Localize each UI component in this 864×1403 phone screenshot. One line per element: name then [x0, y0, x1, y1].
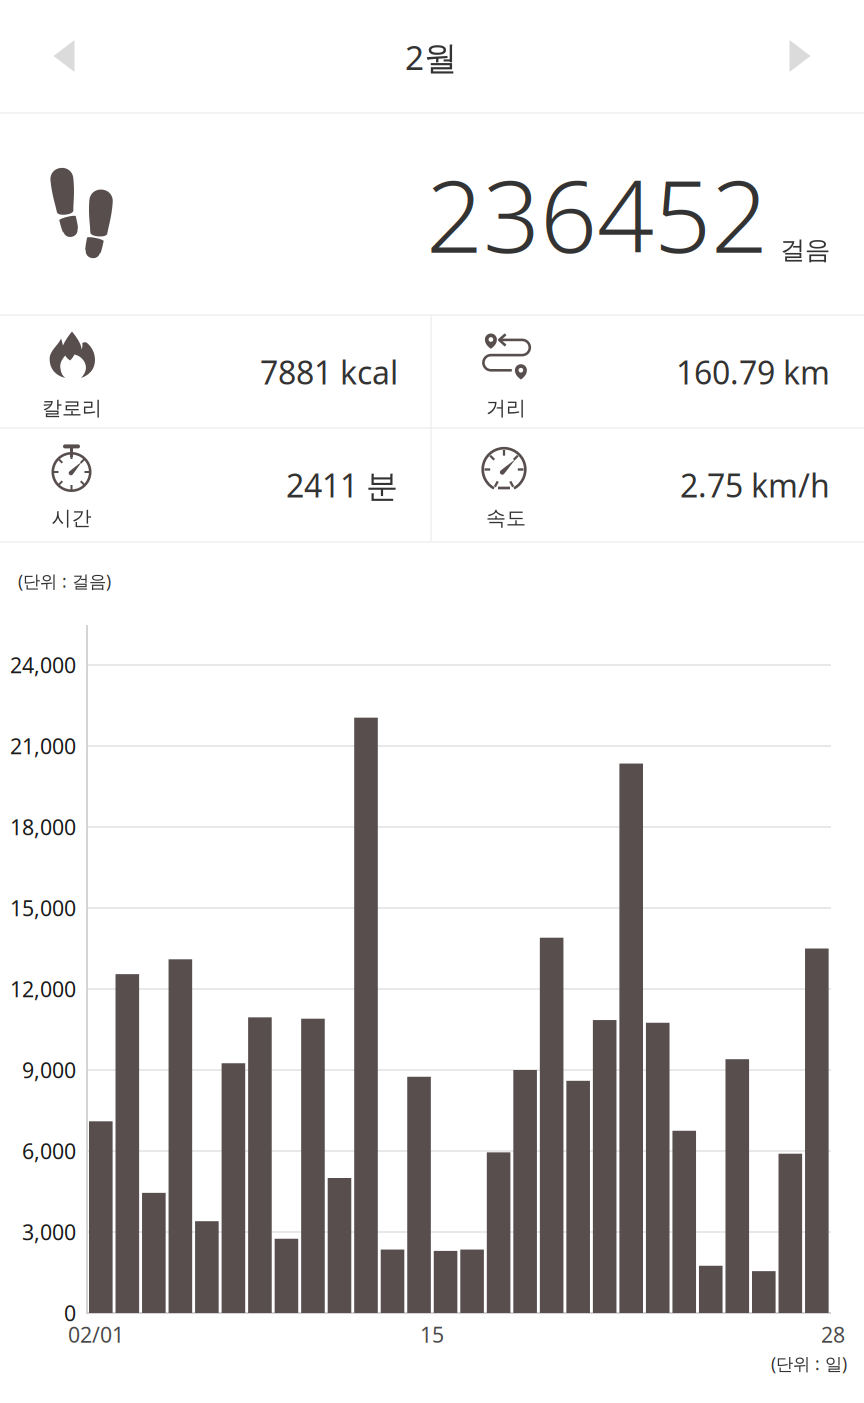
staticText: 속도: [486, 506, 526, 530]
staticText: (단위 : 걸음): [18, 569, 111, 592]
staticText: 21,000: [10, 732, 76, 760]
staticText: 24,000: [10, 651, 76, 679]
staticText: 3,000: [22, 1218, 76, 1246]
staticText: 7881 kcal: [260, 351, 398, 393]
staticText: 2월: [405, 35, 457, 79]
staticText: 2.75 km/h: [680, 464, 830, 506]
staticText: 28: [821, 1320, 845, 1349]
staticText: 6,000: [22, 1137, 76, 1165]
staticText: 시간: [51, 506, 91, 530]
staticText: 236452: [426, 148, 768, 280]
staticText: 12,000: [10, 975, 76, 1003]
button[interactable]: Next month: [742, 0, 858, 112]
button[interactable]: Previous month: [6, 0, 122, 112]
staticText: 2411 분: [286, 464, 398, 506]
staticText: (단위 : 일): [771, 1352, 847, 1375]
staticText: 18,000: [10, 813, 76, 841]
staticText: 거리: [486, 396, 526, 420]
staticText: 15,000: [10, 894, 76, 922]
staticText: 0: [64, 1299, 76, 1327]
staticText: 걸음: [780, 234, 830, 265]
staticText: 160.79 km: [676, 351, 830, 393]
staticText: 칼로리: [42, 396, 102, 420]
staticText: 02/01: [68, 1320, 124, 1349]
staticText: 9,000: [22, 1056, 76, 1084]
staticText: 15: [420, 1320, 444, 1349]
